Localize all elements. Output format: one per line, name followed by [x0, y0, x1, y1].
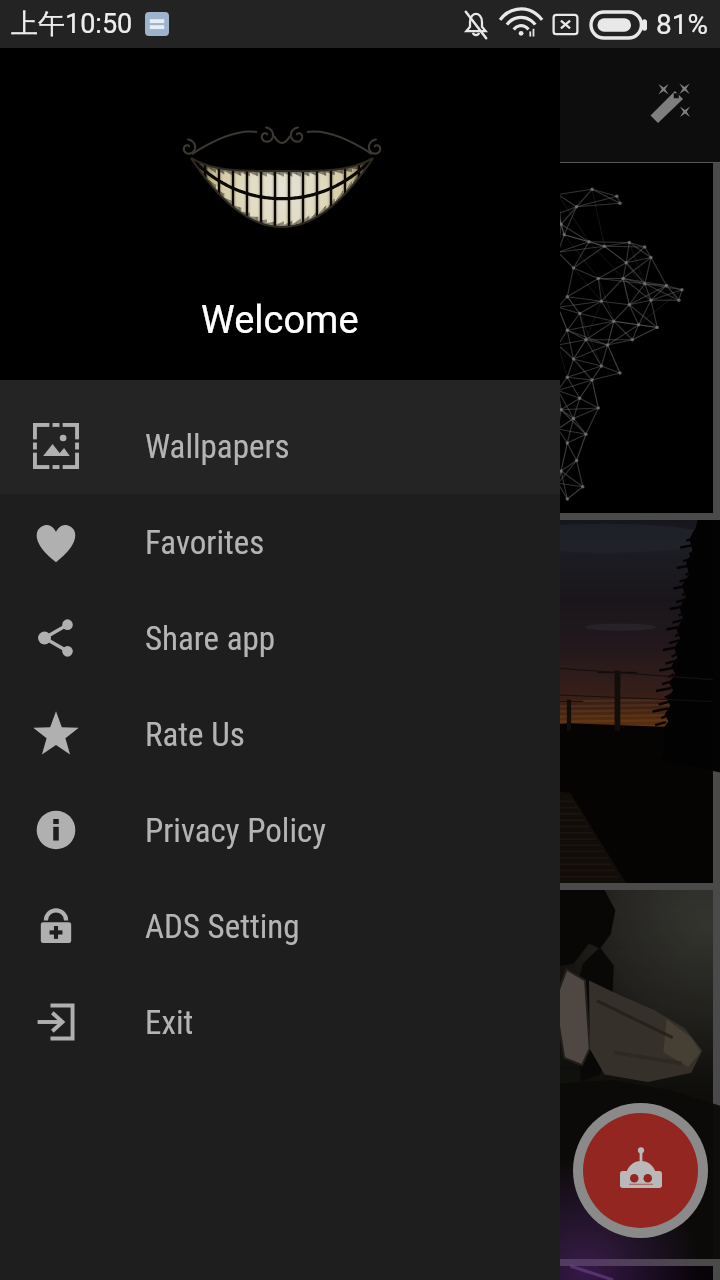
staticText: Rate Us [145, 715, 245, 754]
button[interactable]: ADS Setting [0, 878, 560, 974]
button[interactable]: Favorites [0, 494, 560, 590]
button[interactable] [0, 163, 713, 513]
button[interactable]: Wallpapers [0, 380, 560, 494]
button[interactable]: Exit [0, 974, 560, 1070]
button[interactable] [0, 520, 713, 883]
button[interactable]: Auto fix [640, 75, 700, 135]
button[interactable]: Privacy Policy [0, 782, 560, 878]
button[interactable] [0, 890, 713, 1259]
staticText: Wallpapers [145, 427, 290, 466]
staticText: Favorites [145, 523, 265, 562]
button[interactable] [0, 1266, 713, 1280]
staticText: Share app [145, 619, 276, 658]
button[interactable]: Rate Us [0, 686, 560, 782]
staticText: ADS Setting [145, 907, 300, 946]
staticText: Welcome [201, 298, 359, 343]
staticText: 81% [656, 8, 708, 41]
button[interactable]: Share app [0, 590, 560, 686]
button[interactable]: Robot wallpaper [583, 1113, 698, 1228]
staticText: 上午10:50 [11, 7, 133, 41]
staticText: Exit [145, 1003, 194, 1042]
staticText: Privacy Policy [145, 811, 326, 850]
